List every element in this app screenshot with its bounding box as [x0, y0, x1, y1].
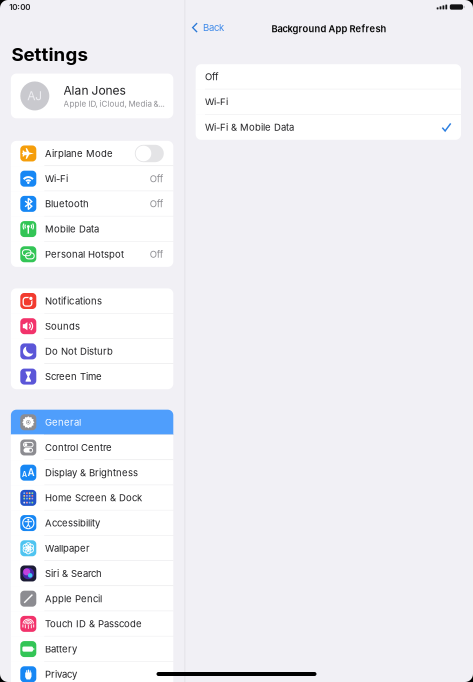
- button[interactable]: Airplane Mode: [11, 141, 173, 166]
- staticText: Off: [150, 173, 164, 184]
- staticText: 10:00: [9, 2, 30, 12]
- button[interactable]: General: [11, 410, 173, 435]
- staticText: Accessibility: [45, 517, 100, 529]
- staticText: Back: [203, 22, 224, 33]
- staticText: Touch ID & Passcode: [45, 618, 142, 630]
- button[interactable]: Sounds: [11, 314, 173, 339]
- staticText: A: [22, 470, 27, 479]
- staticText: Off: [205, 71, 219, 83]
- button[interactable]: Do Not Disturb: [11, 339, 173, 364]
- staticText: Bluetooth: [45, 198, 89, 210]
- button[interactable]: Wi-Fi & Mobile Data: [196, 115, 461, 140]
- staticText: Display & Brightness: [45, 467, 138, 478]
- button[interactable]: Wallpaper: [11, 536, 173, 561]
- button[interactable]: AJ: [11, 74, 173, 118]
- button[interactable]: Wi-Fi: [11, 166, 173, 191]
- staticText: General: [45, 417, 81, 428]
- staticText: Wi-Fi: [45, 173, 68, 184]
- button[interactable]: Battery: [11, 636, 173, 662]
- button[interactable]: Touch ID & Passcode: [11, 611, 173, 636]
- button[interactable]: Notifications: [11, 288, 173, 314]
- staticText: Background App Refresh: [272, 23, 387, 34]
- button[interactable]: Personal Hotspot: [11, 242, 173, 267]
- button[interactable]: Apple Pencil: [11, 586, 173, 611]
- staticText: A: [27, 467, 34, 479]
- staticText: Airplane Mode: [45, 148, 113, 159]
- staticText: Off: [150, 249, 164, 260]
- staticText: Apple ID, iCloud, Media &...: [63, 99, 164, 109]
- staticText: Sounds: [45, 320, 80, 332]
- button[interactable]: Off: [196, 64, 461, 89]
- staticText: Wallpaper: [45, 543, 90, 554]
- staticText: Do Not Disturb: [45, 346, 113, 357]
- button[interactable]: Wi-Fi: [196, 89, 461, 115]
- staticText: Control Centre: [45, 442, 112, 453]
- button[interactable]: A: [11, 460, 173, 485]
- staticText: Off: [150, 198, 164, 210]
- button[interactable]: Control Centre: [11, 435, 173, 460]
- button[interactable]: Accessibility: [11, 510, 173, 536]
- staticText: Wi-Fi: [205, 96, 228, 108]
- staticText: Mobile Data: [45, 223, 99, 235]
- button[interactable]: Back: [185, 17, 232, 39]
- button[interactable]: Privacy: [11, 662, 173, 682]
- button[interactable]: Mobile Data: [11, 216, 173, 242]
- staticText: Alan Jones: [63, 83, 125, 98]
- button[interactable]: Bluetooth: [11, 191, 173, 216]
- staticText: Notifications: [45, 295, 102, 307]
- staticText: Home Screen & Dock: [45, 492, 142, 504]
- staticText: Wi-Fi & Mobile Data: [205, 121, 294, 133]
- staticText: Battery: [45, 643, 77, 655]
- staticText: Screen Time: [45, 371, 102, 382]
- staticText: Privacy: [45, 669, 77, 680]
- staticText: AJ: [27, 89, 42, 103]
- staticText: Settings: [11, 43, 87, 66]
- button[interactable]: Siri & Search: [11, 561, 173, 586]
- staticText: Apple Pencil: [45, 593, 102, 604]
- staticText: Personal Hotspot: [45, 249, 124, 260]
- staticText: Siri & Search: [45, 568, 102, 579]
- button[interactable]: Home Screen & Dock: [11, 485, 173, 510]
- button[interactable]: Screen Time: [11, 364, 173, 389]
